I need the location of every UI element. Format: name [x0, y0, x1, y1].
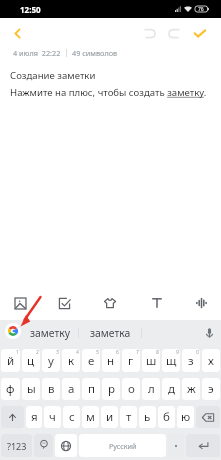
button[interactable]: ц [22, 349, 40, 372]
button[interactable]: в [42, 378, 60, 400]
staticText: я [31, 409, 38, 425]
button[interactable]: х [202, 349, 220, 372]
staticText: 49 символов [72, 48, 118, 58]
button[interactable]: ч [44, 406, 61, 428]
button[interactable]: л [142, 378, 160, 400]
button[interactable]: о [122, 378, 140, 400]
staticText: 12:50 [20, 4, 41, 15]
button[interactable]: й [1, 349, 20, 372]
staticText: и [106, 409, 114, 425]
staticText: ф [6, 381, 15, 397]
staticText: з [188, 353, 194, 369]
staticText: 9 [176, 349, 179, 356]
button[interactable]: ш [142, 349, 160, 372]
button[interactable]: е [82, 349, 100, 372]
staticText: е [88, 353, 95, 369]
staticText: 0 [196, 349, 199, 356]
staticText: б [163, 409, 170, 425]
button[interactable]: ы [22, 378, 40, 400]
button[interactable]: Sticker [96, 289, 124, 317]
staticText: 4 [76, 349, 79, 356]
staticText: ?123 [7, 440, 27, 452]
button[interactable]: заметку [22, 320, 78, 346]
staticText: Нажмите на плюс, чтобы создать заметку. [10, 86, 207, 99]
button[interactable]: Done [188, 21, 212, 45]
staticText: 3 [56, 349, 59, 356]
button[interactable] [168, 434, 184, 457]
staticText: заметку [30, 326, 71, 340]
staticText: ь [144, 409, 151, 425]
staticText: 6 [116, 349, 119, 356]
button[interactable]: б [158, 406, 175, 428]
staticText: 8 [156, 349, 159, 356]
staticText: 1 [16, 349, 19, 356]
staticText: ч [49, 409, 56, 425]
staticText: й [7, 353, 15, 369]
button[interactable]: с [63, 406, 80, 428]
button[interactable]: Enter [186, 434, 220, 457]
staticText: н [107, 353, 115, 369]
button[interactable]: д [162, 378, 180, 400]
staticText: щ [166, 353, 177, 369]
staticText: д [168, 381, 175, 397]
button[interactable]: Back [5, 21, 30, 46]
staticText: у [48, 353, 54, 369]
staticText: в [48, 381, 55, 397]
button[interactable]: к [62, 349, 80, 372]
button[interactable]: ж [182, 378, 200, 400]
button[interactable]: ю [177, 406, 194, 428]
staticText: м [86, 409, 95, 425]
staticText: л [148, 381, 155, 397]
staticText: 4 июля 22:22 [13, 48, 61, 58]
button[interactable]: Voice input [199, 322, 220, 343]
button[interactable]: я [26, 406, 42, 428]
button[interactable]: у [42, 349, 60, 372]
staticText: 5 [96, 349, 99, 356]
button[interactable]: Undo [138, 21, 162, 45]
staticText: р [108, 381, 115, 397]
button[interactable]: щ [162, 349, 180, 372]
button[interactable]: г [122, 349, 140, 372]
staticText: ы [27, 381, 36, 397]
staticText: о [128, 381, 135, 397]
button[interactable]: Change language [55, 434, 77, 457]
staticText: ж [187, 381, 196, 397]
button[interactable]: Text style [143, 289, 171, 317]
staticText: э [208, 381, 214, 397]
button[interactable]: Audio [187, 289, 215, 317]
button[interactable]: п [82, 378, 100, 400]
button[interactable]: з [182, 349, 200, 372]
staticText: ц [27, 353, 35, 369]
staticText: с [69, 409, 75, 425]
staticText: 76 [198, 6, 204, 12]
button[interactable]: и [101, 406, 118, 428]
button[interactable]: а [62, 378, 80, 400]
button[interactable]: м [82, 406, 99, 428]
button[interactable]: Redo [162, 21, 186, 45]
button[interactable]: Backspace [196, 406, 220, 428]
staticText: х [208, 353, 214, 369]
button[interactable]: Русский [79, 434, 166, 457]
button[interactable]: Shift [1, 406, 24, 428]
button[interactable]: ф [1, 378, 20, 400]
button[interactable]: э [202, 378, 220, 400]
staticText: ш [146, 353, 157, 369]
button[interactable]: ь [139, 406, 156, 428]
button[interactable]: н [102, 349, 120, 372]
button[interactable]: Insert image [6, 289, 34, 317]
button[interactable]: р [102, 378, 120, 400]
button[interactable]: ?123 [1, 434, 32, 457]
button[interactable]: Google search [5, 323, 21, 339]
staticText: а [68, 381, 75, 397]
button[interactable]: Checklist [50, 289, 78, 317]
staticText: Русский [109, 441, 137, 451]
staticText: заметка [90, 326, 131, 340]
staticText: Создание заметки [10, 69, 96, 82]
staticText: п [88, 381, 95, 397]
staticText: 7 [136, 349, 139, 356]
staticText: к [68, 353, 75, 369]
staticText: т [126, 409, 132, 425]
button[interactable]: заметка [79, 320, 141, 346]
button[interactable]: т [120, 406, 137, 428]
button[interactable]: Emoji [34, 434, 53, 457]
